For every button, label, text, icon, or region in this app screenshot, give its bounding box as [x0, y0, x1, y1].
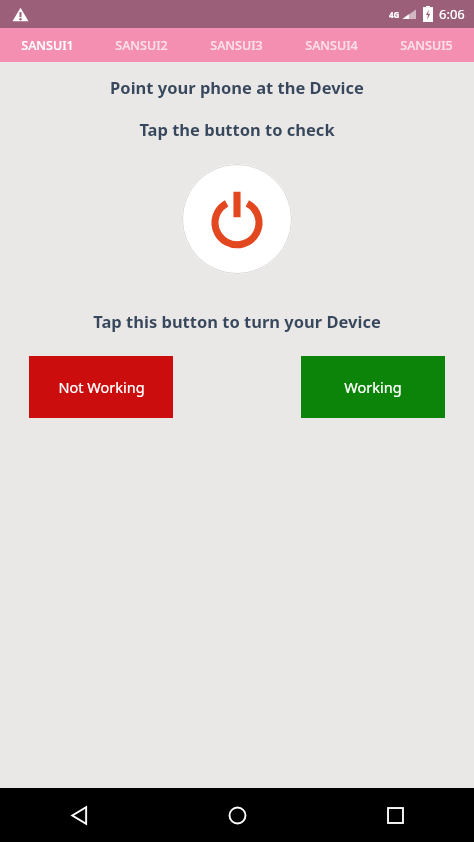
staticText: Not Working	[58, 377, 145, 397]
staticText: SANSUI3	[210, 37, 263, 54]
button[interactable]: Not Working	[29, 356, 173, 418]
button[interactable]: Working	[301, 356, 445, 418]
button[interactable]: Home	[158, 788, 316, 842]
button[interactable]: SANSUI1	[0, 28, 94, 62]
button[interactable]: SANSUI5	[379, 28, 474, 62]
staticText: Tap this button to turn your Device	[93, 310, 381, 332]
staticText: SANSUI4	[305, 37, 358, 54]
button[interactable]: SANSUI3	[189, 28, 284, 62]
button[interactable]: Power	[182, 164, 292, 274]
button[interactable]: Back	[0, 788, 158, 842]
staticText: Working	[344, 377, 402, 397]
staticText: SANSUI1	[21, 37, 74, 54]
staticText: 4G	[389, 9, 400, 20]
button[interactable]: SANSUI2	[94, 28, 189, 62]
staticText: Point your phone at the Device	[110, 76, 364, 98]
button[interactable]: Recent apps	[316, 788, 474, 842]
staticText: SANSUI2	[115, 37, 168, 54]
staticText: 6:06	[439, 5, 465, 23]
button[interactable]: SANSUI4	[284, 28, 379, 62]
staticText: SANSUI5	[400, 37, 453, 54]
staticText: Tap the button to check	[139, 118, 335, 140]
